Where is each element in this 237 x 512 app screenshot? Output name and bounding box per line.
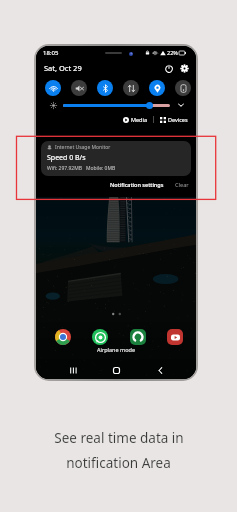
button[interactable]: WhatsApp [92,329,108,345]
button[interactable]: Brightness [146,102,153,109]
button[interactable]: Settings [179,63,190,74]
button[interactable]: Quick setting toggle [149,80,165,96]
button[interactable]: Quick setting toggle [71,80,87,96]
staticText: notification Area [66,454,171,472]
button[interactable]: Quick setting toggle [175,80,191,96]
staticText: 18:05 [43,49,59,57]
staticText: See real time data in [54,429,184,447]
button[interactable]: Expand quick settings [177,101,185,109]
button[interactable]: Back [153,363,167,377]
button[interactable]: Quick setting toggle [45,80,61,96]
staticText: Speed 0 B/s [47,153,86,163]
staticText: Media [131,116,147,123]
button[interactable]: Recents [66,363,80,377]
button[interactable]: Internet Usage Monitor [41,141,191,176]
button[interactable]: Clear [175,181,189,188]
button[interactable]: Media [123,116,147,123]
staticText: Devices [168,116,188,123]
staticText: Internet Usage Monitor [55,144,111,151]
button[interactable]: Home [109,363,123,377]
button[interactable]: Devices [160,116,188,123]
button[interactable]: Quick setting toggle [97,80,113,96]
staticText: Sat, Oct 29 [44,63,82,73]
button[interactable]: Phone [130,329,146,345]
button[interactable]: Chrome [55,329,71,345]
staticText: Wifi: 297.92MB Mobile: 0MB [47,165,116,172]
staticText: 22% [167,49,178,56]
staticText: Airplane mode [97,346,135,353]
button[interactable]: Notification settings [110,181,164,188]
button[interactable]: Power [163,63,174,74]
button[interactable]: Quick setting toggle [123,80,139,96]
button[interactable]: YouTube [167,329,183,345]
